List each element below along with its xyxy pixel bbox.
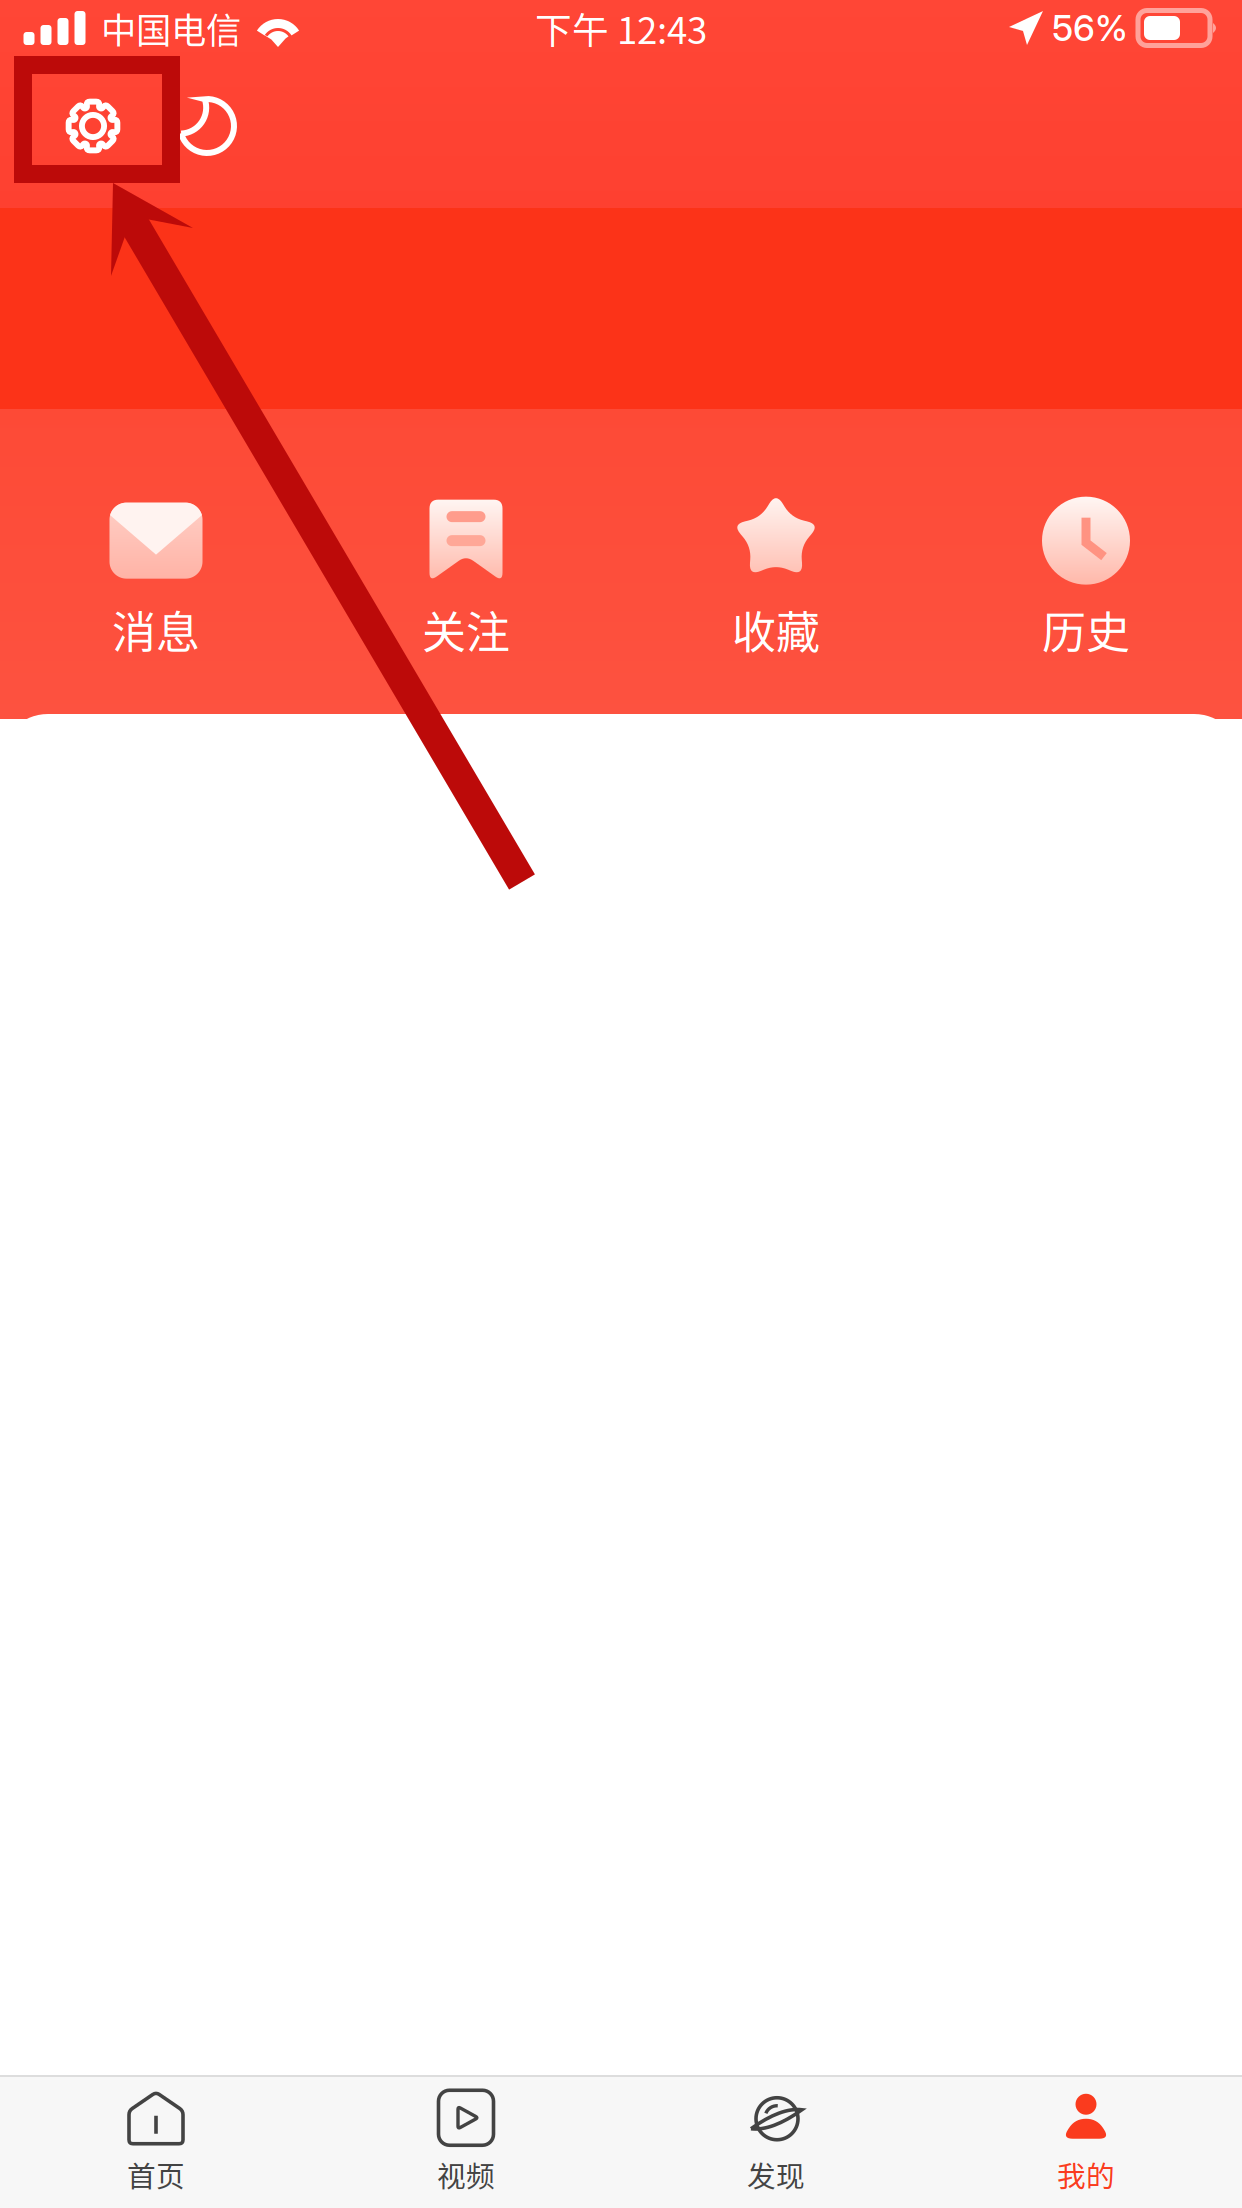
button[interactable]: 我的 — [931, 2077, 1241, 2207]
staticText: 关注 — [422, 598, 510, 661]
button[interactable]: 收藏 — [621, 485, 931, 670]
staticText: 中国电信 — [101, 2, 241, 54]
staticText: 首页 — [127, 2154, 185, 2195]
button[interactable]: 夜间模式 — [152, 56, 262, 196]
button[interactable]: 发现 — [621, 2077, 931, 2207]
button[interactable]: 历史 — [931, 485, 1241, 670]
button[interactable]: 消息 — [1, 485, 311, 670]
button[interactable]: 关注 — [311, 485, 621, 670]
button[interactable]: 视频 — [311, 2077, 621, 2207]
staticText: 我的 — [1057, 2154, 1115, 2195]
staticText: 发现 — [747, 2154, 805, 2195]
staticText: 历史 — [1042, 598, 1130, 661]
staticText: 消息 — [112, 598, 200, 661]
button[interactable]: 设置 — [38, 56, 148, 196]
staticText: 收藏 — [732, 598, 820, 661]
staticText: 视频 — [437, 2154, 495, 2195]
staticText: 下午 12:43 — [535, 1, 707, 55]
staticText: 56% — [1052, 6, 1128, 50]
button[interactable]: 首页 — [1, 2077, 311, 2207]
